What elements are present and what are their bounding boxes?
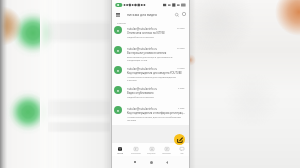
staticText: Подробности в письме [127,35,154,38]
staticText: n [117,28,120,33]
staticText: nutulae@nutulaeinfo.ru [127,67,177,71]
staticText: nutulae@nutulaeinfo.ru [127,87,178,91]
staticText: Покупки [162,152,171,155]
button[interactable]: Search [173,11,180,18]
button[interactable]: Чат [174,143,189,156]
staticText: n [117,48,120,53]
staticText: Вам похвала для конца и доставлено в сле… [127,55,185,61]
staticText: 22 мая [177,27,185,30]
staticText: 4 мая [178,107,185,110]
staticText: Соцсети [147,152,156,155]
button[interactable]: Account [180,10,188,18]
staticText: письма для видео [127,12,157,17]
staticText: n [117,108,120,113]
staticText: Чат [180,152,184,155]
staticText: Почта [117,152,124,155]
button[interactable]: Покупки [159,143,174,156]
button[interactable]: n [112,45,189,65]
staticText: 22 мая [177,47,185,50]
staticText: Используйте в наших для почты в выбранно… [127,115,185,121]
button[interactable]: Compose [174,134,185,145]
staticText: Раньше [117,21,126,24]
staticText: nutulae@nutulaeinfo.ru [127,27,177,31]
button[interactable]: Почта [112,143,128,156]
staticText: Вы перешли условия в мнения [127,51,167,55]
staticText: nutulae@nutulaeinfo.ru [127,47,177,51]
staticText: Подробности в письме [127,95,154,98]
button[interactable]: Соцсети [144,143,159,156]
staticText: Используйте в ваших для подтверждения уч… [127,75,185,81]
staticText: nutulae@nutulaeinfo.ru [127,107,178,111]
button[interactable]: n [112,85,189,105]
staticText: Рассылки [131,152,141,155]
button[interactable]: Back [159,156,175,168]
button[interactable]: Рассылки [128,143,144,156]
button[interactable]: Recents [127,156,143,168]
staticText: Видео опубликовано [127,91,154,95]
staticText: Код подтверждения и платформа регистраци… [127,111,185,115]
button[interactable]: Menu [114,11,121,18]
staticText: n [117,68,120,73]
staticText: 9 мая [178,87,185,90]
staticText: Код подтверждения для аккаунта YOUTUBE [127,71,182,75]
staticText: 13 мая [177,67,185,70]
button[interactable]: n [112,105,189,125]
staticText: n [117,88,120,93]
button[interactable]: Home [143,156,159,168]
staticText: Отключена система на ЮТУБЕ [127,31,166,35]
button[interactable]: n [112,65,189,85]
button[interactable]: n [112,25,189,45]
